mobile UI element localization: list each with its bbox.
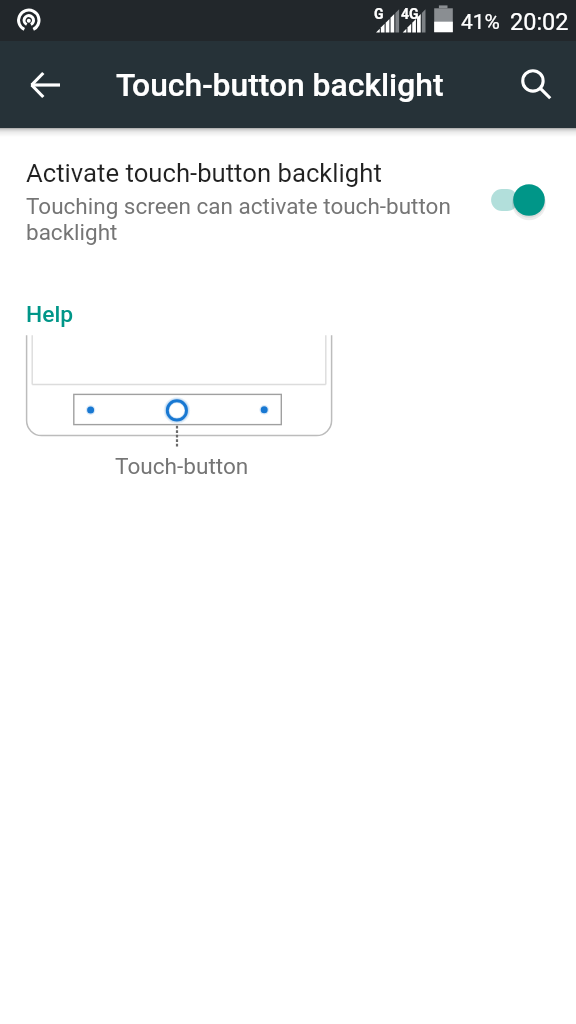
staticText: Touching screen can activate touch-butto… (26, 193, 458, 245)
staticText: 20:02 (510, 8, 569, 36)
button[interactable]: Back (16, 57, 72, 113)
staticText: 41% (461, 10, 500, 35)
button[interactable]: Activate touch-button backlight (478, 172, 550, 228)
staticText: Touch-button backlight (116, 66, 444, 103)
staticText: Activate touch-button backlight (26, 158, 382, 188)
staticText: G (374, 6, 384, 22)
staticText: 4G (401, 6, 419, 22)
button[interactable] (0, 146, 576, 256)
button[interactable]: Help (26, 301, 74, 328)
button[interactable]: Search (508, 57, 564, 113)
staticText: Touch-button (115, 453, 249, 479)
